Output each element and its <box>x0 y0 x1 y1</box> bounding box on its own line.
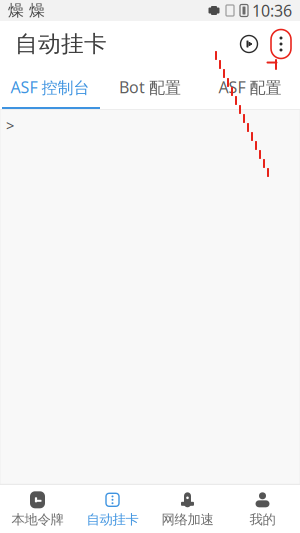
staticText: 本地令牌 <box>11 511 63 528</box>
button[interactable]: ASF 控制台 <box>0 67 100 107</box>
staticText: 网络加速 <box>161 511 213 528</box>
button[interactable]: ASF 配置 <box>200 67 300 107</box>
staticText: ASF 配置 <box>218 76 281 98</box>
staticText: Bot 配置 <box>119 76 181 98</box>
staticText: ASF 控制台 <box>10 76 89 98</box>
button[interactable]: 更多选项 <box>265 28 297 60</box>
button[interactable]: 运行 <box>233 28 265 60</box>
staticText: 10:36 <box>252 0 292 21</box>
staticText: > <box>6 115 14 135</box>
staticText: 自动挂卡 <box>15 30 107 58</box>
button[interactable]: 我的 <box>225 485 300 533</box>
button[interactable]: 自动挂卡 <box>75 485 150 533</box>
button[interactable]: 本地令牌 <box>0 485 75 533</box>
staticText: 我的 <box>249 511 275 528</box>
button[interactable]: Bot 配置 <box>100 67 200 107</box>
button[interactable]: 网络加速 <box>150 485 225 533</box>
staticText: 燥 燥 <box>8 1 45 20</box>
staticText: 自动挂卡 <box>86 511 138 528</box>
